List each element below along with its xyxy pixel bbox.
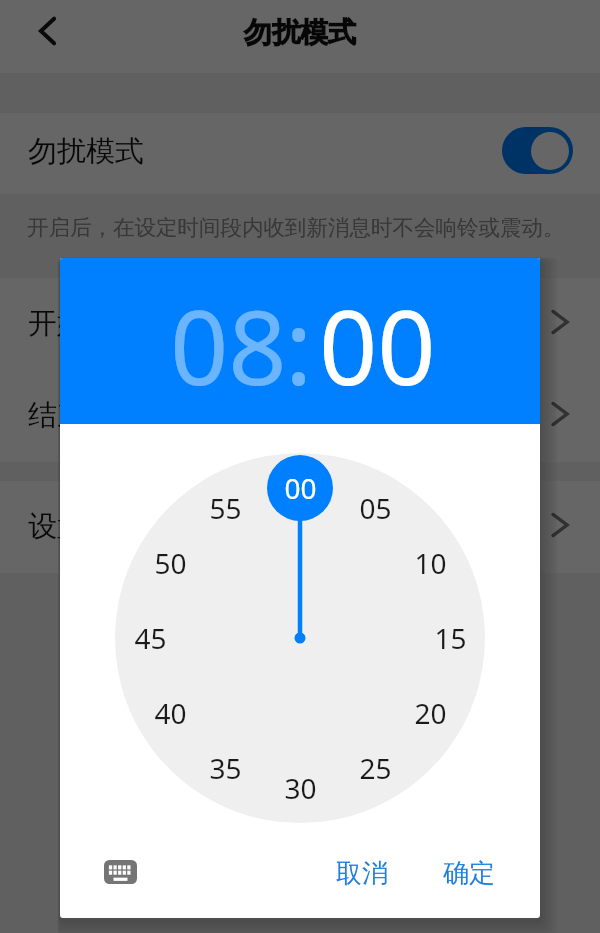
button[interactable]: 勿扰模式 (0, 113, 600, 194)
button[interactable]: 25 (345, 738, 405, 798)
staticText: 55 (209, 489, 242, 527)
button[interactable]: 00 (319, 276, 436, 415)
staticText: 勿扰模式 (244, 15, 356, 50)
staticText: 10 (414, 544, 447, 582)
staticText: 15 (434, 619, 467, 657)
staticText: 结束时间 (28, 397, 144, 434)
staticText: 00 (284, 469, 317, 507)
staticText: 开始时间 (28, 305, 144, 342)
button[interactable]: 00 (270, 458, 330, 518)
button[interactable]: Switch to text input mode (103, 850, 137, 894)
staticText: 设置重复 (28, 508, 144, 545)
staticText: 30 (284, 769, 317, 807)
button[interactable]: 结束时间 (0, 370, 600, 462)
button[interactable]: Back (23, 3, 71, 58)
staticText: 取消 (336, 857, 388, 890)
button[interactable]: 05 (345, 478, 405, 538)
staticText: 45 (134, 619, 167, 657)
button[interactable]: 20 (400, 683, 460, 743)
button[interactable]: 设置重复 (0, 481, 600, 573)
staticText: : (285, 276, 313, 415)
staticText: 35 (209, 749, 242, 787)
button[interactable]: 开始时间 (0, 278, 600, 370)
staticText: 确定 (443, 857, 495, 890)
button[interactable]: 40 (140, 683, 200, 743)
button[interactable]: 55 (195, 478, 255, 538)
staticText: 05 (359, 489, 392, 527)
staticText: 25 (359, 749, 392, 787)
staticText: 20 (414, 694, 447, 732)
button[interactable]: 15 (420, 608, 480, 668)
button[interactable]: 30 (270, 758, 330, 818)
staticText: 开启后，在设定时间段内收到新消息时不会响铃或震动。 (27, 214, 565, 241)
staticText: 勿扰模式 (28, 133, 144, 170)
staticText: 50 (154, 544, 187, 582)
button[interactable]: 确定 (439, 851, 499, 895)
button[interactable]: 50 (140, 533, 200, 593)
button[interactable]: 10 (400, 533, 460, 593)
button[interactable]: 35 (195, 738, 255, 798)
button[interactable]: 取消 (332, 851, 392, 895)
button[interactable]: 45 (120, 608, 180, 668)
staticText: 40 (154, 694, 187, 732)
button[interactable]: 08 (170, 276, 287, 415)
